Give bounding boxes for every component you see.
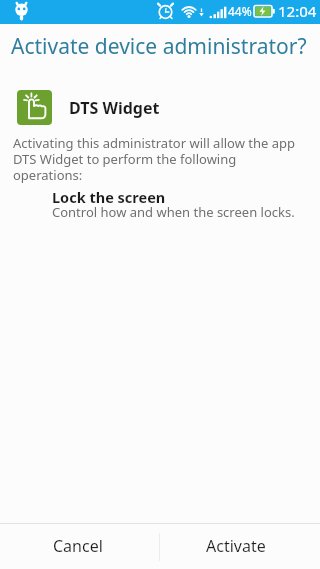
- staticText: 12:04: [278, 1, 317, 21]
- staticText: Control how and when the screen locks.: [52, 203, 295, 221]
- button[interactable]: Cancel: [0, 524, 159, 569]
- staticText: Cancel: [53, 535, 103, 557]
- staticText: DTS Widget: [69, 97, 160, 119]
- staticText: 44%: [228, 3, 252, 19]
- staticText: Activating this administrator will allow…: [13, 134, 306, 183]
- staticText: Activate device administrator?: [11, 32, 307, 61]
- staticText: Lock the screen: [52, 187, 166, 207]
- staticText: Activate: [206, 535, 266, 557]
- button[interactable]: Activate: [160, 524, 320, 569]
